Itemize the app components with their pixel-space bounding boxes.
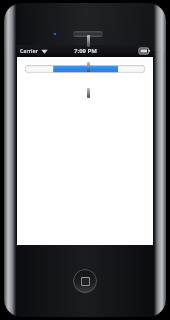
- button[interactable]: Progress: [25, 65, 145, 73]
- staticText: Carrier: [20, 48, 39, 55]
- button[interactable]: Home: [73, 269, 97, 293]
- staticText: 7:09 PM: [74, 47, 97, 55]
